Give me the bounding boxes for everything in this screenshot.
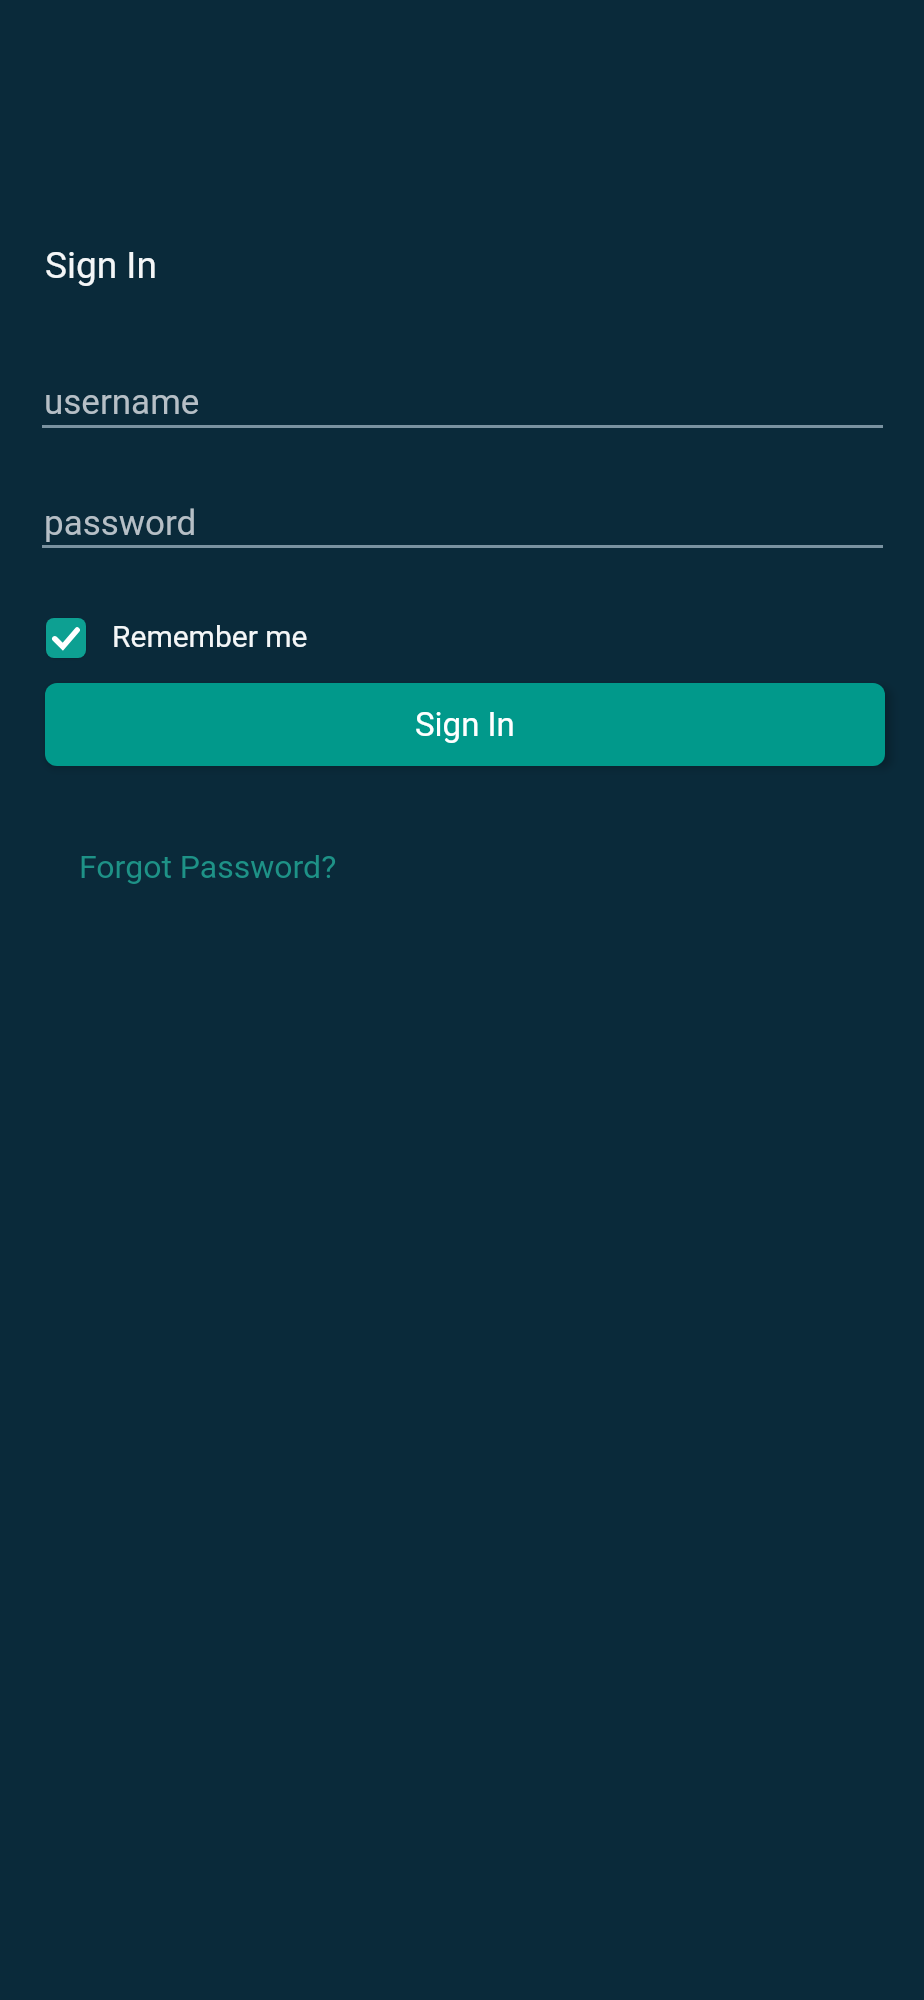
button[interactable]: Sign In (45, 683, 885, 766)
staticText: Sign In (45, 244, 157, 287)
button[interactable] (46, 618, 86, 658)
button[interactable]: Forgot Password? (79, 848, 337, 886)
staticText: Sign In (415, 705, 515, 744)
staticText: username (44, 382, 200, 423)
staticText: Remember me (112, 619, 308, 654)
staticText: password (44, 503, 197, 544)
